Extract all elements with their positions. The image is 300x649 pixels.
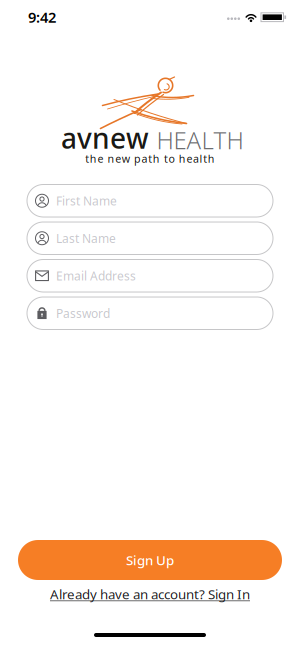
button[interactable]: Last Name: [26, 221, 273, 255]
staticText: First Name: [56, 193, 117, 209]
staticText: Sign Up: [126, 551, 174, 569]
staticText: Email Address: [56, 268, 136, 284]
staticText: HEALTH: [156, 124, 243, 156]
staticText: avnew: [61, 119, 149, 157]
button[interactable]: Email Address: [26, 259, 273, 292]
button[interactable]: First Name: [26, 184, 273, 217]
button[interactable]: Password: [26, 296, 273, 330]
staticText: 9:42: [28, 7, 56, 27]
button[interactable]: Already have an account? Sign In: [50, 585, 250, 603]
button[interactable]: Sign Up: [18, 540, 282, 580]
staticText: Already have an account? Sign In: [50, 585, 250, 603]
staticText: Last Name: [56, 230, 116, 246]
staticText: Password: [56, 305, 110, 321]
staticText: the new path to health: [85, 151, 215, 166]
